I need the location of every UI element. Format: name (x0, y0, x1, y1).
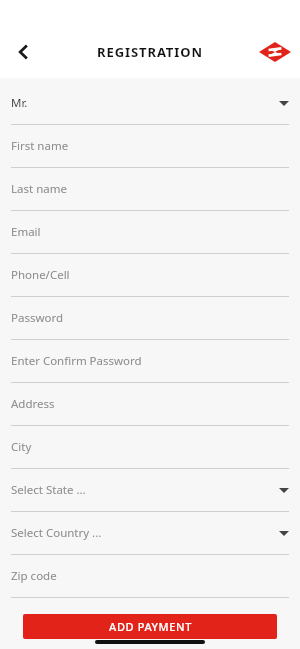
button[interactable]: First name (0, 125, 300, 168)
staticText: Zip code (11, 568, 57, 584)
button[interactable]: Last name (0, 168, 300, 211)
staticText: Select State ... (11, 482, 86, 498)
staticText: Phone/Cell (11, 267, 70, 283)
button[interactable]: Email (0, 211, 300, 254)
button[interactable]: Enter Confirm Password (0, 340, 300, 383)
staticText: Select Country ... (11, 525, 102, 541)
button[interactable]: Back (6, 34, 42, 70)
staticText: Password (11, 310, 64, 326)
staticText: First name (11, 138, 69, 154)
staticText: Address (11, 396, 55, 412)
staticText: ADD PAYMENT (109, 619, 192, 634)
button[interactable]: Address (0, 383, 300, 426)
staticText: Email (11, 224, 41, 240)
button[interactable]: Mr. (0, 82, 300, 125)
staticText: Enter Confirm Password (11, 353, 142, 369)
button[interactable]: Phone/Cell (0, 254, 300, 297)
button[interactable]: Password (0, 297, 300, 340)
button[interactable]: City (0, 426, 300, 469)
button[interactable]: ADD PAYMENT (23, 614, 277, 639)
button[interactable]: Brand logo (259, 42, 291, 62)
staticText: City (11, 439, 32, 455)
button[interactable]: Select State ... (0, 469, 300, 512)
staticText: Mr. (11, 95, 28, 111)
button[interactable]: Select Country ... (0, 512, 300, 555)
staticText: Last name (11, 181, 67, 197)
button[interactable]: Zip code (0, 555, 300, 598)
staticText: REGISTRATION (97, 43, 203, 61)
